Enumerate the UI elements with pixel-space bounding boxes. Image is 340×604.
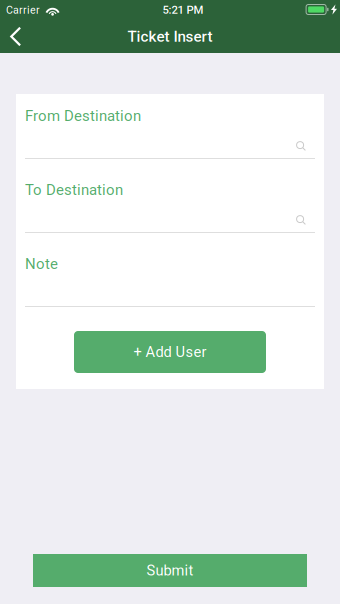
button[interactable]: Submit — [33, 554, 307, 587]
staticText: From Destination — [25, 107, 141, 125]
staticText: To Destination — [25, 181, 123, 199]
staticText: Ticket Insert — [127, 28, 212, 45]
button[interactable]: Back — [0, 20, 29, 53]
staticText: + Add User — [133, 343, 206, 361]
staticText: Submit — [146, 562, 193, 579]
button[interactable]: + Add User — [74, 331, 266, 373]
staticText: Note — [25, 255, 58, 273]
staticText: Carrier — [6, 4, 40, 16]
staticText: 5:21 PM — [163, 3, 204, 17]
